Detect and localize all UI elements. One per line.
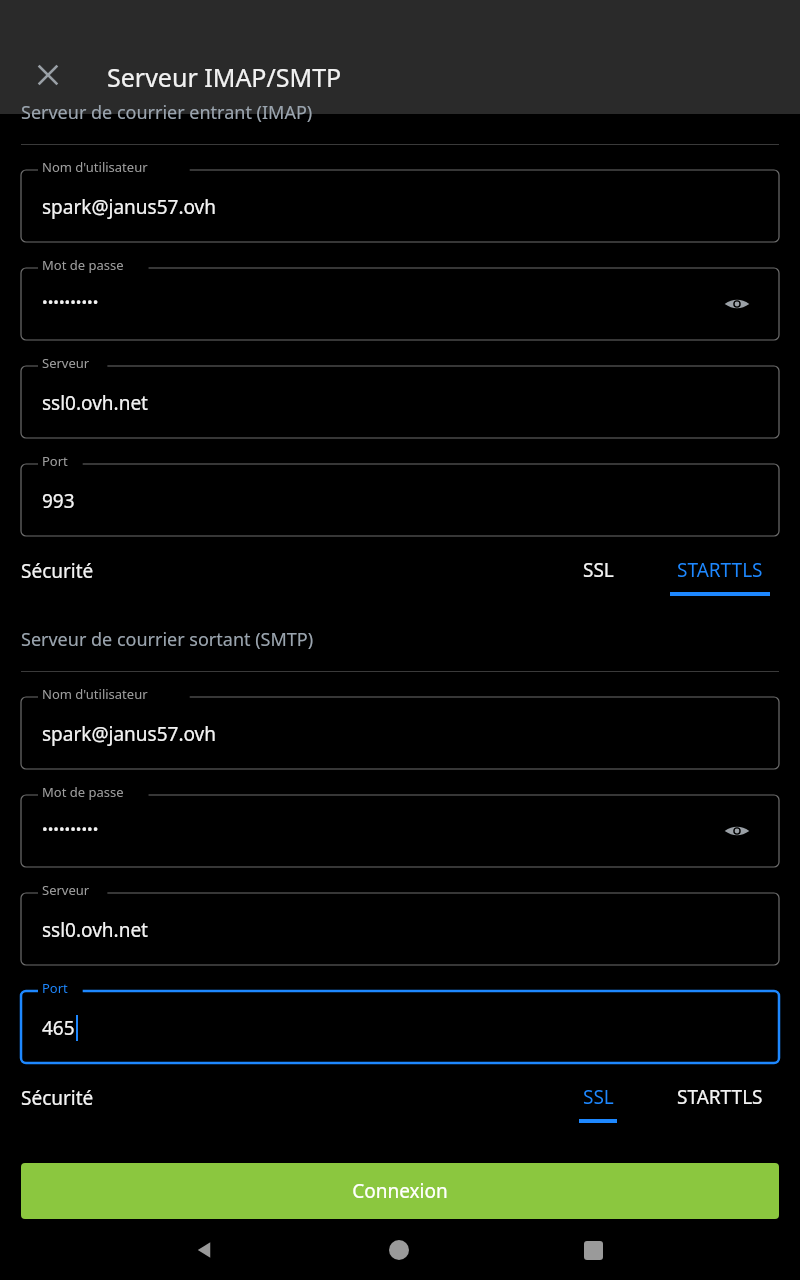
button[interactable]: Connexion: [21, 1163, 779, 1219]
button[interactable]: Retour: [155, 1220, 255, 1280]
staticText: ssl0.ovh.net: [42, 390, 148, 416]
staticText: Port: [42, 979, 68, 997]
button[interactable]: Nom d'utilisateur: [21, 685, 779, 769]
staticText: spark@janus57.ovh: [42, 721, 217, 747]
button[interactable]: Serveur: [21, 354, 779, 438]
button[interactable]: Accueil: [349, 1220, 449, 1280]
button[interactable]: STARTTLS: [662, 1079, 778, 1137]
button[interactable]: Port: [21, 979, 779, 1063]
button[interactable]: Fermer: [14, 41, 82, 109]
staticText: Serveur: [42, 354, 90, 372]
button[interactable]: Applications récentes: [543, 1220, 643, 1280]
button[interactable]: Mot de passe: [21, 783, 779, 867]
staticText: STARTTLS: [677, 557, 763, 583]
staticText: Mot de passe: [42, 256, 124, 274]
button[interactable]: SSL: [558, 552, 638, 610]
staticText: ••••••••••: [42, 292, 99, 312]
staticText: STARTTLS: [677, 1084, 763, 1110]
staticText: Mot de passe: [42, 783, 124, 801]
button[interactable]: Afficher le mot de passe: [709, 276, 765, 332]
staticText: SSL: [583, 557, 614, 583]
staticText: Nom d'utilisateur: [42, 158, 148, 176]
button[interactable]: Serveur: [21, 881, 779, 965]
staticText: Serveur IMAP/SMTP: [107, 60, 342, 94]
button[interactable]: SSL: [558, 1079, 638, 1137]
staticText: SSL: [583, 1084, 614, 1110]
staticText: Serveur: [42, 881, 90, 899]
staticText: ••••••••••: [42, 819, 99, 839]
staticText: Sécurité: [21, 1085, 94, 1111]
staticText: ssl0.ovh.net: [42, 917, 148, 943]
staticText: Sécurité: [21, 558, 94, 584]
staticText: Nom d'utilisateur: [42, 685, 148, 703]
button[interactable]: Port: [21, 452, 779, 536]
staticText: 993: [42, 488, 75, 514]
staticText: Serveur de courrier sortant (SMTP): [21, 627, 314, 652]
staticText: Connexion: [352, 1178, 448, 1204]
staticText: Serveur de courrier entrant (IMAP): [21, 100, 313, 125]
button[interactable]: Nom d'utilisateur: [21, 158, 779, 242]
staticText: 465: [42, 1015, 75, 1041]
button[interactable]: STARTTLS: [662, 552, 778, 610]
button[interactable]: Mot de passe: [21, 256, 779, 340]
button[interactable]: Afficher le mot de passe: [709, 803, 765, 859]
staticText: spark@janus57.ovh: [42, 194, 217, 220]
staticText: Port: [42, 452, 68, 470]
